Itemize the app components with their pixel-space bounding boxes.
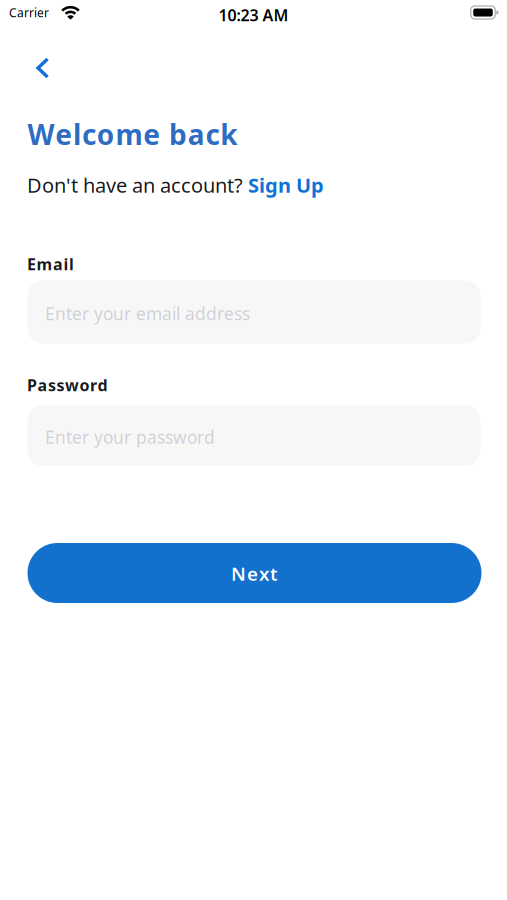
staticText: Sign Up <box>248 172 324 198</box>
staticText: c <box>205 115 219 153</box>
staticText: e <box>143 115 160 153</box>
staticText: k <box>220 115 237 153</box>
staticText: Don't have an account? <box>27 172 243 198</box>
button[interactable]: Enter your password <box>27 405 480 466</box>
staticText: W <box>27 115 54 153</box>
button[interactable]: Sign Up <box>248 172 324 198</box>
button[interactable]: Enter your email address <box>27 280 480 343</box>
staticText: m <box>115 115 142 153</box>
staticText: l <box>73 115 81 153</box>
staticText: Email <box>27 253 74 275</box>
button[interactable] <box>31 55 55 80</box>
staticText: a <box>188 115 205 153</box>
staticText: e <box>55 115 72 153</box>
staticText: Carrier <box>9 5 49 20</box>
staticText: c <box>82 115 96 153</box>
staticText: Enter your email address <box>45 302 250 325</box>
staticText: b <box>169 115 187 153</box>
staticText: 10:23 AM <box>218 4 288 26</box>
staticText: o <box>97 115 115 153</box>
staticText: Next <box>231 561 278 586</box>
staticText: Password <box>27 374 107 396</box>
button[interactable]: Next <box>27 543 481 603</box>
staticText: Enter your password <box>45 425 215 448</box>
